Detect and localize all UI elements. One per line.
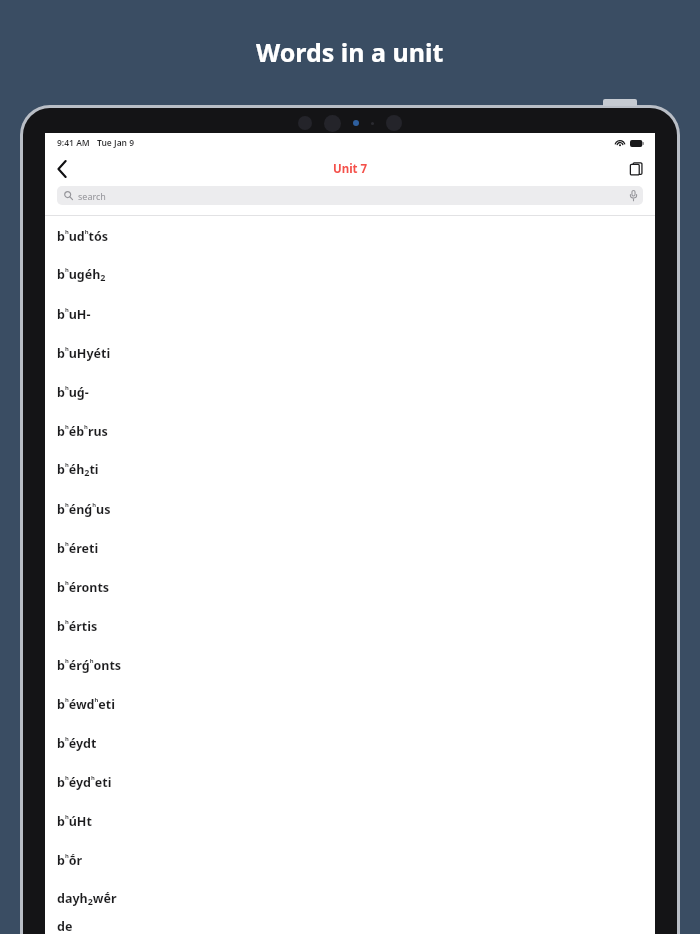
staticText: search	[78, 190, 106, 202]
button[interactable]: bʰéydt	[45, 723, 655, 762]
staticText: bʰuHyéti	[57, 344, 111, 362]
button[interactable]: bʰéwdʰeti	[45, 684, 655, 723]
button[interactable]: bʰéreti	[45, 528, 655, 567]
button[interactable]: bʰudʰtós	[45, 216, 655, 255]
staticText: bʰuǵ-	[57, 383, 89, 401]
staticText: bʰṓr	[57, 851, 83, 869]
button[interactable]: Flashcards	[617, 152, 655, 185]
button[interactable]: bʰuHyéti	[45, 333, 655, 372]
staticText: bʰéreti	[57, 539, 99, 557]
staticText: bʰéronts	[57, 578, 110, 596]
staticText: bʰudʰtós	[57, 227, 109, 245]
button[interactable]: bʰṓr	[45, 840, 655, 879]
button[interactable]: dayh2wḗr	[45, 879, 655, 918]
staticText: dayh2wḗr	[57, 890, 117, 908]
staticText: bʰéh2ti	[57, 460, 99, 479]
button[interactable]: bʰuH-	[45, 294, 655, 333]
button[interactable]: bʰéydʰeti	[45, 762, 655, 801]
staticText: bʰugéh2	[57, 265, 106, 284]
button[interactable]: search	[57, 186, 643, 205]
staticText: bʰénǵʰus	[57, 500, 111, 518]
button[interactable]: bʰértis	[45, 606, 655, 645]
staticText: bʰérǵʰonts	[57, 656, 122, 674]
button[interactable]: bʰénǵʰus	[45, 489, 655, 528]
staticText: bʰéydʰeti	[57, 773, 112, 791]
staticText: bʰébʰrus	[57, 422, 108, 440]
button[interactable]: Back	[45, 152, 79, 185]
staticText: Unit 7	[333, 161, 368, 177]
button[interactable]: bʰéronts	[45, 567, 655, 606]
button[interactable]: bʰéh2ti	[45, 450, 655, 489]
staticText: bʰéydt	[57, 734, 97, 752]
staticText: 9:41 AM	[57, 137, 90, 149]
staticText: bʰuH-	[57, 305, 91, 323]
staticText: bʰértis	[57, 617, 98, 635]
staticText: bʰéwdʰeti	[57, 695, 115, 713]
button[interactable]: bʰuǵ-	[45, 372, 655, 411]
staticText: Tue Jan 9	[97, 137, 135, 149]
button[interactable]: bʰugéh2	[45, 255, 655, 294]
button[interactable]: bʰébʰrus	[45, 411, 655, 450]
staticText: Words in a unit	[256, 35, 444, 69]
staticText: de	[57, 918, 73, 934]
button[interactable]: bʰúHt	[45, 801, 655, 840]
staticText: bʰúHt	[57, 812, 92, 830]
button[interactable]: de	[45, 918, 655, 934]
button[interactable]: bʰérǵʰonts	[45, 645, 655, 684]
